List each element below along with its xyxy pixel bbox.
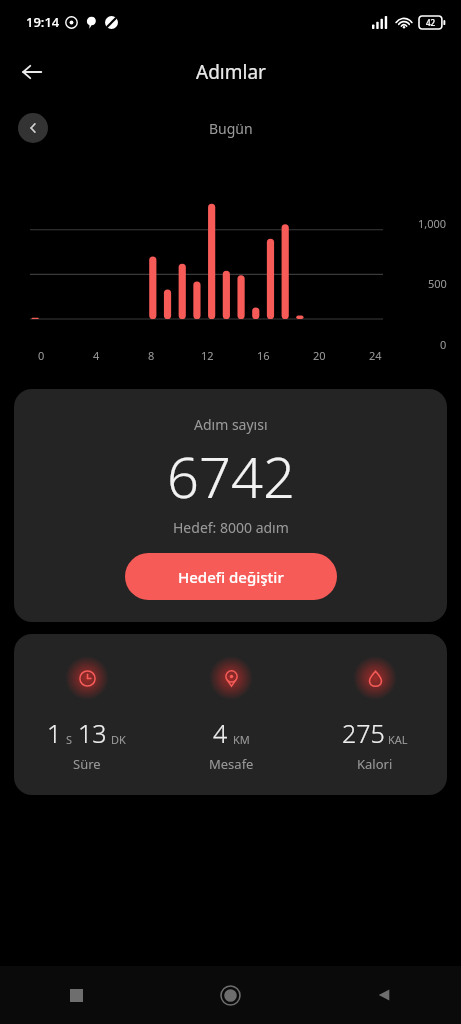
- staticText: Adım sayısı: [194, 415, 268, 434]
- staticText: 500: [428, 276, 447, 291]
- staticText: Mesafe: [209, 755, 254, 773]
- staticText: Hedefi değiştir: [178, 567, 284, 587]
- staticText: Kalori: [357, 755, 393, 773]
- staticText: 4: [213, 716, 228, 750]
- button[interactable]: Distance: [159, 656, 303, 773]
- button[interactable]: Back: [8, 48, 56, 96]
- staticText: DK: [111, 732, 126, 747]
- button[interactable]: Hedefi değiştir: [125, 553, 337, 600]
- staticText: Adımlar: [196, 59, 266, 85]
- staticText: Bugün: [209, 119, 253, 138]
- staticText: KAL: [388, 732, 408, 747]
- staticText: 1: [47, 716, 62, 750]
- staticText: 8: [148, 348, 155, 363]
- staticText: 12: [201, 348, 214, 363]
- button[interactable]: Duration: [14, 656, 159, 773]
- staticText: 42: [426, 17, 436, 28]
- staticText: 24: [369, 348, 382, 363]
- staticText: 0: [38, 348, 45, 363]
- button[interactable]: Recents: [0, 966, 153, 1024]
- staticText: 19:14: [26, 13, 60, 31]
- button[interactable]: Back: [307, 966, 461, 1024]
- button[interactable]: Previous day: [18, 113, 48, 143]
- staticText: 0: [440, 337, 447, 352]
- button[interactable]: Home: [153, 966, 307, 1024]
- staticText: Süre: [73, 755, 101, 773]
- staticText: KM: [233, 732, 250, 747]
- staticText: 275: [342, 716, 385, 750]
- button[interactable]: Calories: [303, 656, 447, 773]
- staticText: 6742: [167, 438, 295, 514]
- staticText: Hedef: 8000 adım: [173, 518, 289, 537]
- staticText: 4: [93, 348, 100, 363]
- staticText: 20: [313, 348, 326, 363]
- staticText: S: [66, 732, 73, 747]
- button[interactable]: Adım sayısı: [14, 389, 447, 622]
- staticText: 1,000: [418, 216, 447, 231]
- staticText: 13: [78, 716, 107, 750]
- staticText: 16: [257, 348, 270, 363]
